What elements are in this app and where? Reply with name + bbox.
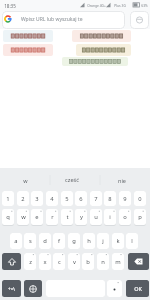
button[interactable]: 0 — [134, 191, 146, 206]
button[interactable]: e — [31, 209, 43, 225]
button[interactable]: x — [39, 253, 51, 270]
staticText: 2 — [21, 195, 25, 203]
button[interactable]: 9 — [119, 191, 131, 206]
button[interactable]: j — [97, 233, 109, 249]
staticText: g — [72, 237, 76, 245]
button[interactable] — [3, 44, 53, 56]
staticText: OK — [134, 285, 142, 292]
staticText: o — [123, 213, 127, 221]
button[interactable]: z — [24, 253, 36, 270]
button[interactable]: i — [104, 209, 116, 225]
staticText: Plus 3G — [114, 3, 126, 7]
staticText: u — [94, 213, 98, 221]
staticText: w — [21, 213, 26, 221]
staticText: 63% — [141, 3, 148, 7]
button[interactable]: l — [126, 233, 138, 249]
staticText: p — [138, 213, 142, 221]
button[interactable]: r — [46, 209, 58, 225]
staticText: 3 — [35, 195, 39, 203]
staticText: 9 — [123, 195, 127, 203]
button[interactable]: a — [10, 233, 22, 249]
staticText: t — [66, 213, 69, 221]
button[interactable]: 2 — [17, 191, 29, 206]
button[interactable] — [24, 280, 42, 297]
button[interactable]: p — [134, 209, 146, 225]
button[interactable]: 6 — [75, 191, 87, 206]
button[interactable] — [72, 30, 131, 42]
staticText: d — [43, 237, 47, 245]
button[interactable]: q — [2, 209, 14, 225]
button[interactable]: 5 — [61, 191, 73, 206]
staticText: f — [58, 237, 60, 245]
button[interactable]: g — [68, 233, 80, 249]
staticText: c — [58, 258, 61, 266]
staticText: h — [87, 237, 91, 245]
button[interactable] — [107, 280, 122, 297]
staticText: 18:35 — [4, 3, 16, 9]
staticText: 7 — [94, 195, 98, 203]
button[interactable]: 3 — [31, 191, 43, 206]
button[interactable]: u — [90, 209, 102, 225]
button[interactable]: b — [82, 253, 94, 270]
button[interactable]: 8 — [104, 191, 116, 206]
staticText: 5 — [65, 195, 69, 203]
staticText: Orange 4G+ — [87, 3, 106, 7]
staticText: l — [131, 237, 133, 245]
button[interactable]: t — [61, 209, 73, 225]
staticText: r — [51, 213, 54, 221]
staticText: Wpisz URL lub wyszukaj te — [21, 16, 83, 23]
staticText: z — [29, 258, 32, 266]
staticText: q — [6, 213, 10, 221]
staticText: m — [115, 258, 121, 266]
staticText: nie — [118, 177, 126, 184]
staticText: j — [102, 237, 104, 245]
button[interactable]: f — [53, 233, 65, 249]
staticText: e — [35, 213, 39, 221]
staticText: b — [86, 258, 90, 266]
staticText: +=\ — [8, 286, 15, 292]
button[interactable]: o — [119, 209, 131, 225]
staticText: i — [109, 213, 111, 221]
button[interactable]: 1 — [2, 191, 14, 206]
button[interactable] — [62, 57, 128, 66]
button[interactable] — [2, 253, 21, 270]
button[interactable]: cześć — [52, 174, 92, 186]
staticText: 0 — [138, 195, 142, 203]
button[interactable]: 4 — [46, 191, 58, 206]
staticText: 1 — [6, 195, 10, 203]
button[interactable]: y — [75, 209, 87, 225]
button[interactable]: 7 — [90, 191, 102, 206]
staticText: 8 — [108, 195, 112, 203]
button[interactable]: w — [5, 174, 45, 186]
staticText: x — [43, 258, 47, 266]
staticText: n — [101, 258, 105, 266]
button[interactable]: Wpisz URL lub wyszukaj te — [2, 11, 125, 29]
staticText: s — [29, 237, 32, 245]
button[interactable]: h — [83, 233, 95, 249]
button[interactable]: +=\ — [2, 280, 21, 297]
button[interactable]: w — [17, 209, 29, 225]
button[interactable]: k — [112, 233, 124, 249]
staticText: 6 — [79, 195, 83, 203]
button[interactable]: nie — [102, 174, 142, 186]
button[interactable] — [3, 30, 53, 42]
button[interactable] — [130, 11, 149, 29]
button[interactable] — [128, 253, 149, 270]
staticText: cześć — [65, 176, 79, 184]
button[interactable]: c — [53, 253, 65, 270]
staticText: v — [73, 258, 76, 266]
staticText: 4 — [50, 195, 54, 203]
button[interactable]: s — [24, 233, 36, 249]
button[interactable]: m — [112, 253, 124, 270]
staticText: w — [23, 177, 28, 184]
staticText: k — [116, 237, 120, 245]
staticText: a — [14, 237, 18, 245]
button[interactable]: n — [97, 253, 109, 270]
button[interactable]: v — [68, 253, 80, 270]
button[interactable]: d — [39, 233, 51, 249]
button[interactable]: OK — [126, 280, 149, 297]
button[interactable] — [76, 44, 131, 56]
staticText: y — [80, 213, 83, 221]
